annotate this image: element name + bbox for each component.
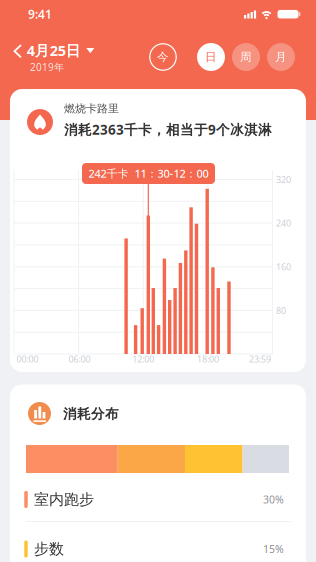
staticText: 06:00 [69,353,91,365]
staticText: 室内跑步 [34,490,94,509]
staticText: 日 [205,50,217,64]
staticText: 15% [263,542,284,556]
staticText: 240 [276,217,291,229]
staticText: 23:59 [249,353,271,365]
button[interactable]: 4月25日 [27,39,99,61]
staticText: 12:00 [132,353,154,365]
staticText: 消耗分布 [63,405,119,422]
staticText: 周 [240,50,252,64]
staticText: 2019年 [30,60,64,74]
staticText: 242千卡 11：30-12：00 [88,166,208,181]
staticText: 消耗2363千卡，相当于9个冰淇淋 [64,120,272,139]
button[interactable]: Back [7,39,27,63]
staticText: 今 [157,50,169,64]
button[interactable]: 月 [267,43,295,71]
button[interactable]: 日 [197,43,225,71]
button[interactable]: 今 [149,43,177,71]
staticText: 00:00 [16,353,38,365]
button[interactable]: 周 [232,43,260,71]
staticText: 月 [275,50,287,64]
staticText: 80 [276,304,286,317]
staticText: 燃烧卡路里 [64,102,119,115]
staticText: 30% [263,492,284,507]
staticText: 160 [276,261,291,273]
staticText: 步数 [34,540,64,558]
staticText: 320 [276,173,291,186]
staticText: 18:00 [197,353,219,365]
staticText: 4月25日 [27,40,81,60]
staticText: 9:41 [28,6,52,22]
